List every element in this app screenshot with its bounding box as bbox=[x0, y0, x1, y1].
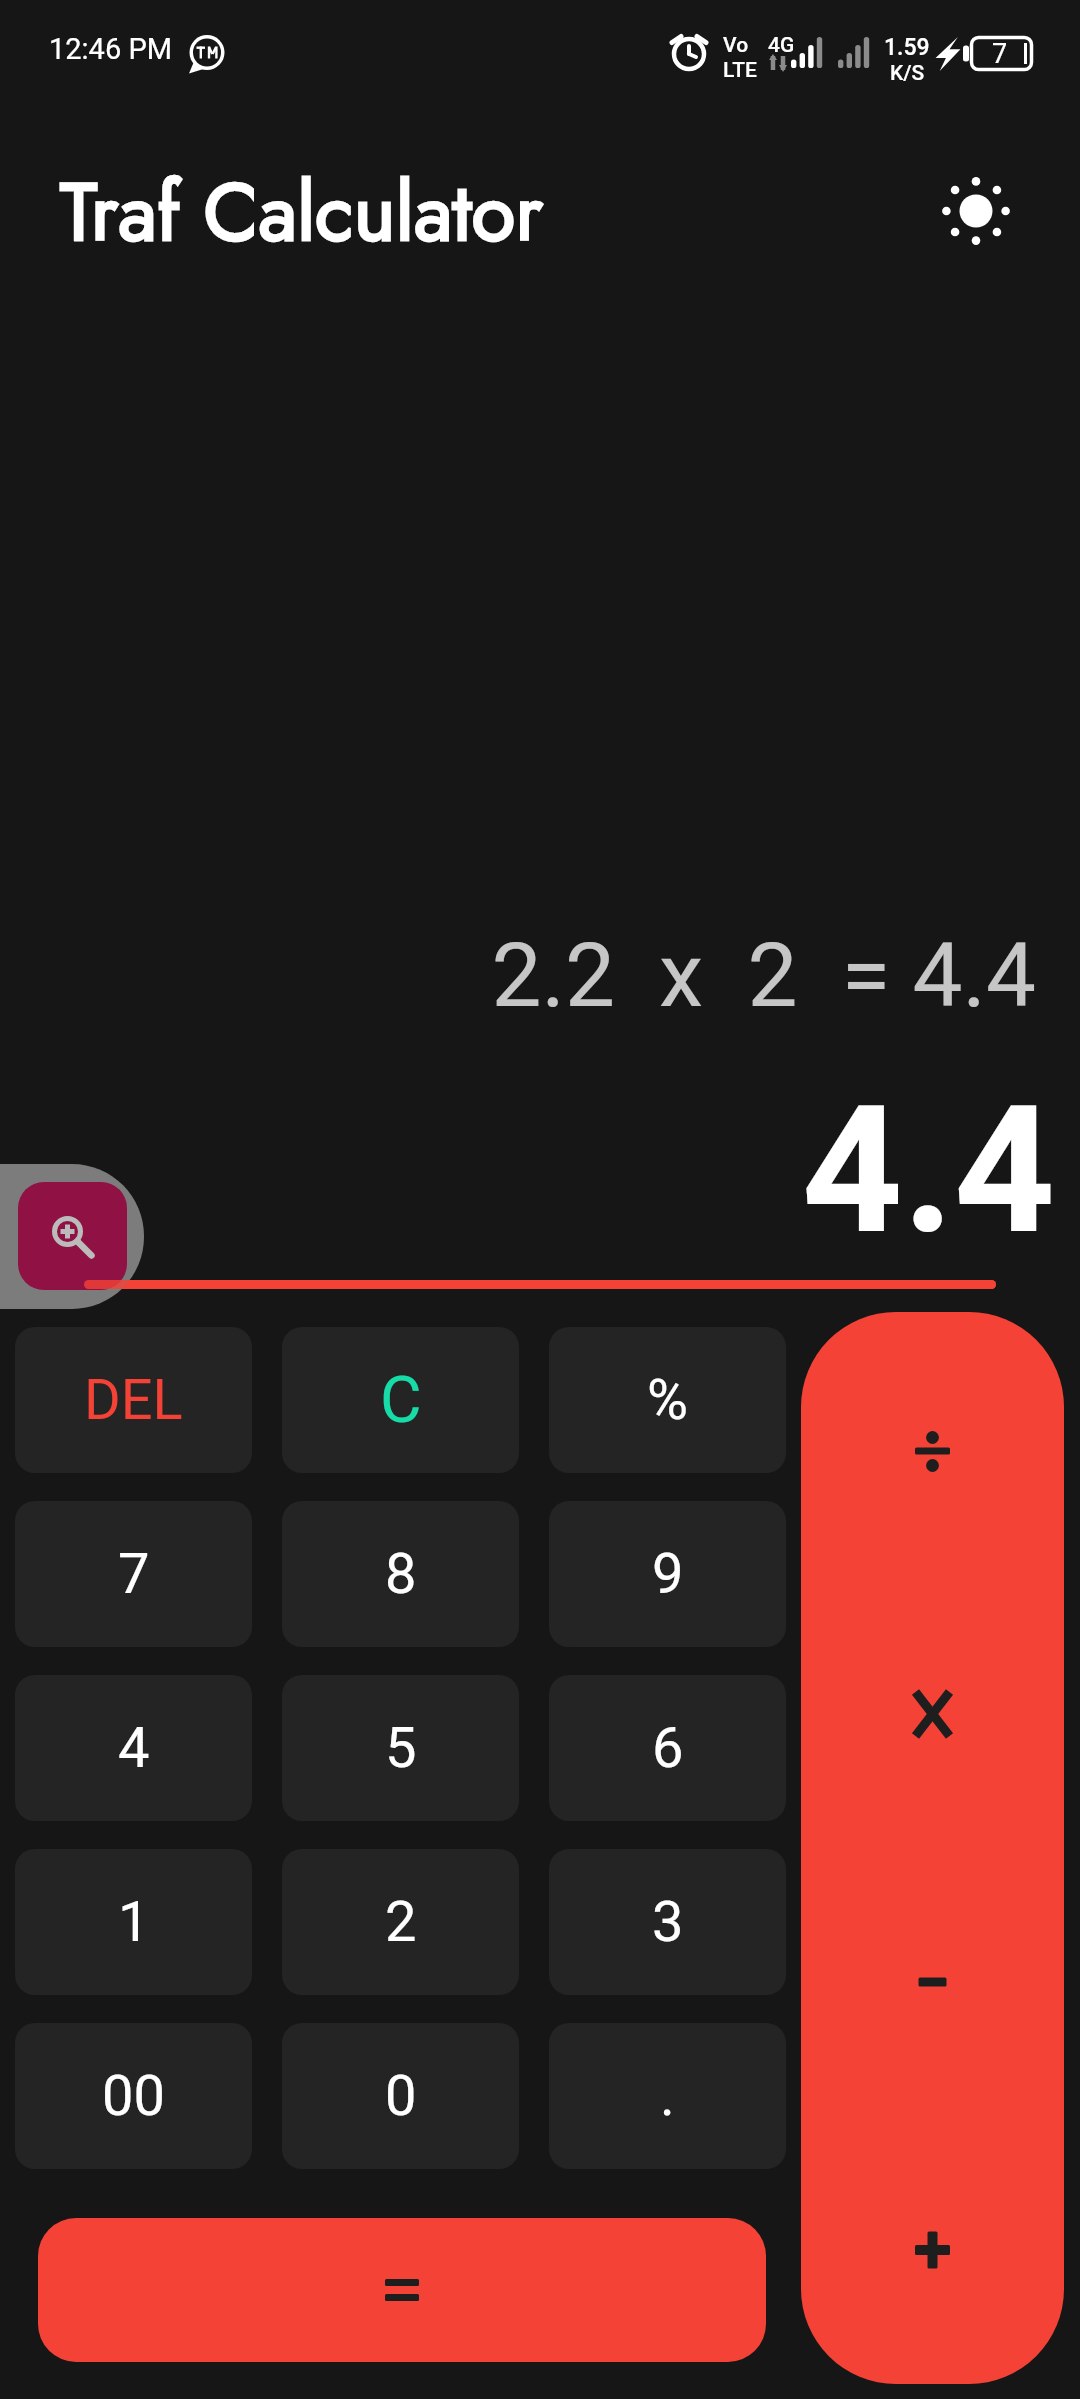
button[interactable]: 4 bbox=[15, 1675, 252, 1821]
staticText: Vo bbox=[723, 33, 749, 58]
button[interactable]: Minus bbox=[801, 1848, 1064, 2116]
button[interactable]: Divide bbox=[801, 1312, 1064, 1580]
staticText: C bbox=[380, 1363, 422, 1438]
button[interactable]: 9 bbox=[549, 1501, 786, 1647]
button[interactable]: Toggle brightness bbox=[926, 161, 1026, 261]
button[interactable]: 6 bbox=[549, 1675, 786, 1821]
button[interactable]: 2 bbox=[282, 1849, 519, 1995]
button[interactable]: 00 bbox=[15, 2023, 252, 2169]
button[interactable]: 8 bbox=[282, 1501, 519, 1647]
staticText: 1.59 bbox=[884, 34, 930, 61]
staticText: 9 bbox=[652, 1541, 684, 1607]
staticText: 7 bbox=[118, 1541, 150, 1607]
staticText: 4.4 bbox=[0, 1068, 1055, 1274]
staticText: 3 bbox=[652, 1889, 684, 1955]
staticText: % bbox=[647, 1367, 689, 1433]
staticText: 7 bbox=[992, 38, 1008, 70]
button[interactable]: Equals bbox=[38, 2218, 766, 2362]
button[interactable]: Multiply bbox=[801, 1580, 1064, 1848]
button[interactable]: C bbox=[282, 1327, 519, 1473]
staticText: K/S bbox=[890, 61, 925, 86]
button[interactable]: 7 bbox=[15, 1501, 252, 1647]
staticText: 0 bbox=[385, 2063, 417, 2129]
staticText: 6 bbox=[652, 1715, 684, 1781]
staticText: 5 bbox=[385, 1715, 417, 1781]
button[interactable]: % bbox=[549, 1327, 786, 1473]
button[interactable]: 1 bbox=[15, 1849, 252, 1995]
staticText: DEL bbox=[84, 1367, 183, 1433]
button[interactable]: 0 bbox=[282, 2023, 519, 2169]
staticText: . bbox=[660, 2063, 675, 2129]
button[interactable]: Zoom in bbox=[18, 1182, 127, 1290]
button[interactable]: 3 bbox=[549, 1849, 786, 1995]
button[interactable]: DEL bbox=[15, 1327, 252, 1473]
staticText: 00 bbox=[102, 2063, 165, 2129]
button[interactable]: . bbox=[549, 2023, 786, 2169]
staticText: 12:46 PM bbox=[49, 32, 173, 66]
staticText: 2.2 x 2 = 4.4 bbox=[0, 923, 1036, 1027]
staticText: Traf Calculator bbox=[60, 154, 543, 270]
staticText: 4 bbox=[118, 1715, 150, 1781]
button[interactable]: 5 bbox=[282, 1675, 519, 1821]
staticText: LTE bbox=[723, 58, 757, 83]
staticText: 1 bbox=[118, 1889, 150, 1955]
staticText: 4G bbox=[768, 33, 795, 58]
button[interactable]: Plus bbox=[801, 2116, 1064, 2384]
staticText: 2 bbox=[385, 1889, 417, 1955]
staticText: 8 bbox=[385, 1541, 417, 1607]
